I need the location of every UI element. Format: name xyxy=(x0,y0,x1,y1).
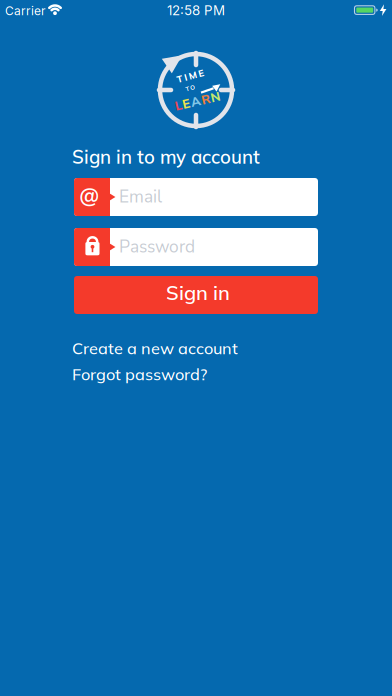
staticText: Carrier xyxy=(5,3,46,18)
staticText: O xyxy=(190,84,195,92)
staticText: Email xyxy=(119,185,162,209)
staticText: N xyxy=(211,93,221,109)
staticText: Forgot password? xyxy=(72,364,207,384)
staticText: E xyxy=(182,93,190,109)
staticText: T xyxy=(185,84,189,92)
staticText: E xyxy=(199,70,205,82)
staticText: R xyxy=(201,93,210,109)
button[interactable]: Create a new account xyxy=(72,338,238,358)
staticText: 12:58 PM xyxy=(167,2,225,18)
staticText: Sign in to my account xyxy=(72,145,260,168)
staticText: M xyxy=(189,70,197,82)
button[interactable]: Sign in xyxy=(74,276,318,314)
staticText: Create a new account xyxy=(72,338,238,358)
button[interactable]: @ xyxy=(74,178,318,216)
staticText: Password xyxy=(119,235,195,259)
button[interactable]: Password xyxy=(74,228,318,266)
staticText: I xyxy=(184,70,187,82)
staticText: L xyxy=(174,93,181,109)
staticText: A xyxy=(191,93,201,109)
staticText: Sign in xyxy=(166,280,230,305)
staticText: T xyxy=(176,70,182,82)
staticText: @ xyxy=(79,182,99,208)
button[interactable]: Forgot password? xyxy=(72,364,207,384)
